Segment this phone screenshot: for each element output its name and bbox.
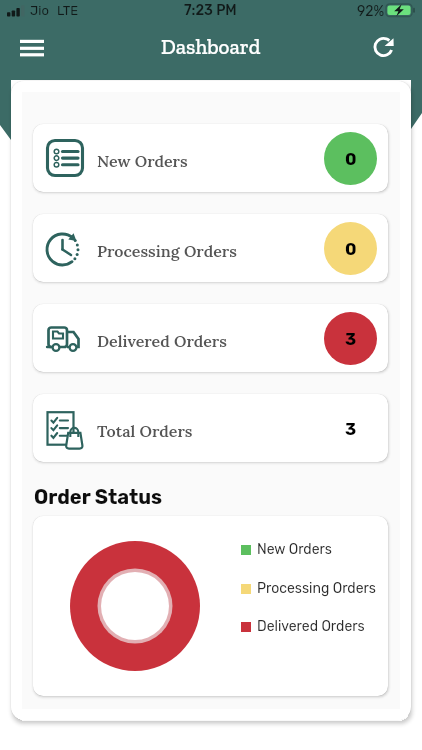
- staticText: Processing Orders: [257, 580, 376, 597]
- staticText: 0: [345, 239, 357, 259]
- staticText: LTE: [57, 3, 79, 18]
- button[interactable]: Refresh: [363, 27, 404, 67]
- staticText: 3: [345, 329, 357, 349]
- staticText: 7:23 PM: [184, 2, 237, 19]
- button[interactable]: New Orders: [33, 124, 388, 192]
- staticText: Delivered Orders: [97, 331, 227, 351]
- staticText: Processing Orders: [97, 241, 237, 261]
- staticText: Jio: [30, 3, 49, 18]
- staticText: 3: [345, 419, 357, 439]
- button[interactable]: Open navigation menu: [10, 28, 54, 68]
- staticText: New Orders: [97, 151, 188, 171]
- staticText: Dashboard: [161, 34, 261, 59]
- button[interactable]: Processing Orders: [33, 214, 388, 282]
- staticText: Delivered Orders: [257, 618, 365, 635]
- staticText: Order Status: [34, 485, 163, 509]
- staticText: Total Orders: [97, 421, 193, 441]
- staticText: 92%: [357, 3, 385, 20]
- staticText: New Orders: [257, 541, 332, 558]
- staticText: 0: [345, 149, 357, 169]
- button[interactable]: Total Orders: [33, 394, 388, 462]
- button[interactable]: Delivered Orders: [33, 304, 388, 372]
